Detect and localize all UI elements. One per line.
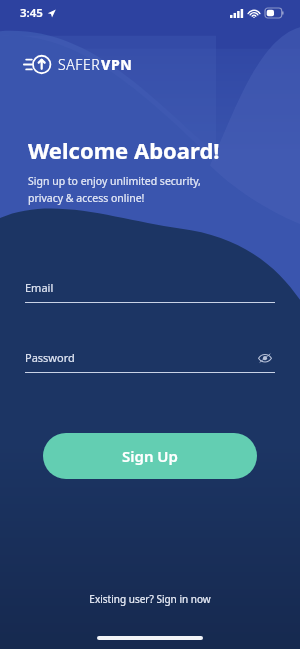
- button[interactable]: Password: [25, 350, 275, 373]
- staticText: Sign up to enjoy unlimited security,: [28, 174, 201, 188]
- staticText: Welcome Aboard!: [28, 135, 220, 165]
- button[interactable]: Sign Up: [43, 433, 257, 479]
- staticText: VPN: [101, 55, 133, 74]
- staticText: 3:45: [20, 5, 43, 21]
- button[interactable]: Existing user? Sign in now: [79, 588, 221, 610]
- button[interactable]: SaferVPN logo: [25, 55, 133, 74]
- staticText: SAFER: [58, 55, 101, 74]
- staticText: Sign Up: [122, 446, 178, 466]
- staticText: Password: [25, 350, 75, 365]
- button[interactable]: Show password: [255, 348, 275, 368]
- staticText: privacy & access online!: [28, 191, 145, 205]
- staticText: Existing user? Sign in now: [89, 592, 211, 606]
- button[interactable]: Email: [25, 280, 275, 303]
- staticText: Email: [25, 280, 54, 295]
